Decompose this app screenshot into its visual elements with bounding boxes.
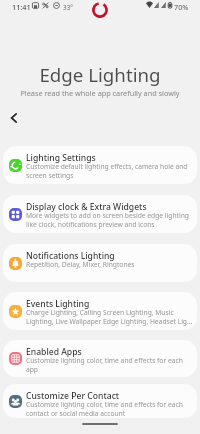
button[interactable]: Back	[5, 109, 23, 127]
button[interactable]: Customize Per Contact	[3, 384, 197, 418]
staticText: Notifications Lighting	[26, 250, 191, 262]
staticText: Edge Lighting	[0, 62, 200, 87]
staticText: Repetition, Delay, Mixer, Ringtones	[26, 260, 193, 269]
button[interactable]: Display clock & Extra Widgets	[3, 195, 197, 233]
staticText: Charge Lighting, Calling Screen Lighting…	[26, 308, 193, 326]
staticText: Enabled Apps	[26, 346, 191, 358]
staticText: Events Lighting	[26, 298, 191, 310]
button[interactable]: Enabled Apps	[3, 340, 197, 377]
staticText: Customize lighting color, time and effec…	[26, 356, 193, 374]
staticText: Customize default lighting effects, came…	[26, 162, 193, 180]
button[interactable]: Lighting Settings	[3, 146, 197, 184]
staticText: More widgets to add on screen beside edg…	[26, 211, 193, 229]
staticText: 70%	[174, 2, 189, 12]
staticText: Display clock & Extra Widgets	[26, 201, 191, 213]
button[interactable]: Events Lighting	[3, 292, 197, 330]
staticText: Please read the whole app carefully and …	[0, 88, 200, 98]
staticText: 33°	[63, 3, 74, 12]
button[interactable]: Notifications Lighting	[3, 244, 197, 282]
staticText: Lighting Settings	[26, 152, 191, 164]
staticText: Customize lighting color, time and effec…	[26, 400, 193, 418]
staticText: 11:41	[12, 2, 31, 12]
staticText: Customize Per Contact	[26, 390, 191, 402]
